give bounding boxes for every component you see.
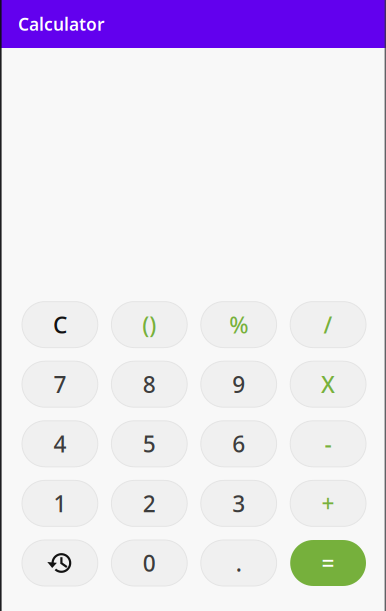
staticText: () [142,309,156,340]
staticText: 7 [53,369,66,399]
button[interactable]: History [22,540,98,586]
button[interactable]: 4 [22,421,98,467]
staticText: C [53,309,67,340]
button[interactable]: % [201,302,277,348]
staticText: 9 [232,369,245,399]
staticText: 2 [143,488,156,518]
staticText: + [322,488,335,518]
staticText: . [236,548,242,578]
button[interactable]: 7 [22,361,98,407]
staticText: = [322,548,335,578]
button[interactable]: / [290,302,366,348]
button[interactable]: . [201,540,277,586]
staticText: % [229,309,248,340]
button[interactable]: 5 [111,421,187,467]
button[interactable]: () [111,302,187,348]
staticText: Calculator [18,12,105,35]
staticText: 8 [143,369,156,399]
button[interactable]: - [290,421,366,467]
staticText: - [325,429,332,459]
staticText: 5 [143,429,156,459]
button[interactable]: 3 [201,480,277,526]
button[interactable]: 6 [201,421,277,467]
button[interactable]: 9 [201,361,277,407]
staticText: / [324,309,333,340]
button[interactable]: 1 [22,480,98,526]
button[interactable]: 8 [111,361,187,407]
button[interactable]: + [290,480,366,526]
staticText: 0 [143,548,156,578]
staticText: 4 [53,429,66,459]
button[interactable]: 0 [111,540,187,586]
staticText: X [321,369,335,399]
staticText: 1 [53,488,66,518]
staticText: 3 [232,488,245,518]
button[interactable]: = [290,540,366,586]
button[interactable]: 2 [111,480,187,526]
staticText: 6 [232,429,245,459]
button[interactable]: C [22,302,98,348]
button[interactable]: X [290,361,366,407]
